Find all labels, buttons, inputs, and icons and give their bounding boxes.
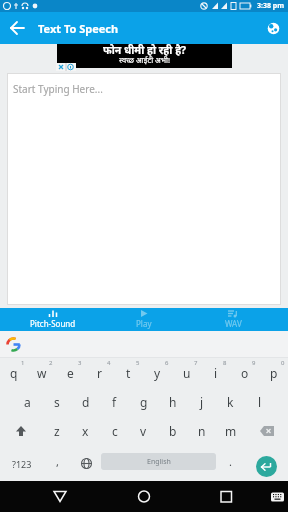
button[interactable]: y	[143, 358, 172, 388]
staticText: i	[214, 365, 218, 381]
staticText: l	[258, 394, 262, 410]
staticText: u	[183, 365, 191, 381]
staticText: 0	[281, 359, 285, 367]
button[interactable]	[214, 485, 238, 509]
button[interactable]	[8, 18, 28, 38]
button[interactable]: ?123	[0, 446, 43, 481]
staticText: 6	[165, 359, 169, 367]
button[interactable]: s	[42, 388, 71, 416]
button[interactable]: k	[216, 388, 245, 416]
staticText: p	[270, 365, 278, 381]
button[interactable]: r	[85, 358, 114, 388]
staticText: 2	[49, 359, 53, 367]
staticText: Text To Speech	[38, 21, 119, 36]
staticText: t	[126, 365, 131, 381]
staticText: g	[140, 394, 148, 410]
staticText: .	[229, 454, 232, 469]
staticText: o	[241, 365, 249, 381]
button[interactable]: x	[71, 416, 100, 446]
button[interactable]	[6, 337, 21, 352]
button[interactable]	[0, 416, 42, 446]
button[interactable]: g	[129, 388, 158, 416]
button[interactable]: d	[71, 388, 100, 416]
staticText: 3:38 pm	[257, 1, 285, 11]
staticText: w	[37, 365, 47, 381]
button[interactable]: v	[129, 416, 158, 446]
staticText: Start Typing Here...	[13, 82, 103, 96]
staticText: 1	[21, 359, 25, 367]
button[interactable]	[267, 22, 280, 35]
staticText: 7	[194, 359, 198, 367]
staticText: c	[112, 423, 118, 439]
staticText: s	[54, 394, 60, 410]
staticText: ,	[56, 454, 59, 469]
button[interactable]: w	[28, 358, 56, 388]
staticText: 8	[223, 359, 227, 367]
button[interactable]	[245, 416, 288, 446]
button[interactable]: Start Typing Here...	[7, 73, 281, 305]
button[interactable]: .	[216, 446, 245, 481]
button[interactable]: English	[101, 446, 216, 481]
staticText: r	[97, 365, 102, 381]
button[interactable]	[132, 485, 156, 509]
staticText: 9	[252, 359, 256, 367]
button[interactable]	[245, 446, 288, 481]
button[interactable]: m	[216, 416, 245, 446]
staticText: x	[82, 423, 89, 439]
button[interactable]: WAV	[185, 308, 281, 331]
staticText: q	[10, 365, 18, 381]
button[interactable]: p	[259, 358, 288, 388]
button[interactable]: t	[114, 358, 143, 388]
staticText: j	[200, 394, 204, 410]
button[interactable]: n	[187, 416, 216, 446]
button[interactable]	[48, 485, 72, 509]
button[interactable]: b	[158, 416, 187, 446]
staticText: a	[24, 394, 31, 410]
staticText: 4	[107, 359, 111, 367]
staticText: h	[169, 394, 177, 410]
button[interactable]: फोन धीमी हो रही है?	[57, 44, 232, 68]
button[interactable]: Play	[96, 308, 192, 331]
button[interactable]: l	[245, 388, 274, 416]
button[interactable]: j	[187, 388, 216, 416]
button[interactable]: e	[56, 358, 85, 388]
staticText: b	[169, 423, 177, 439]
staticText: k	[227, 394, 234, 410]
staticText: 5	[136, 359, 140, 367]
staticText: f	[112, 394, 117, 410]
staticText: y	[154, 365, 161, 381]
button[interactable]: c	[100, 416, 129, 446]
button[interactable]: a	[13, 388, 42, 416]
staticText: v	[140, 423, 147, 439]
staticText: e	[67, 365, 74, 381]
button[interactable]: i	[201, 358, 230, 388]
button[interactable]: z	[42, 416, 71, 446]
staticText: Play	[136, 318, 152, 329]
staticText: फोन धीमी हो रही है?	[103, 43, 187, 57]
button[interactable]: ,	[43, 446, 72, 481]
staticText: 3	[78, 359, 82, 367]
button[interactable]: q	[0, 358, 28, 388]
button[interactable]: Pitch-Sound	[5, 308, 101, 331]
button[interactable]: u	[172, 358, 201, 388]
staticText: z	[54, 423, 60, 439]
button[interactable]: o	[230, 358, 259, 388]
staticText: स्वच्छ आईटी अभी!	[119, 55, 171, 65]
button[interactable]	[72, 446, 101, 481]
staticText: ?123	[12, 458, 32, 470]
button[interactable]: f	[100, 388, 129, 416]
staticText: n	[198, 423, 206, 439]
button[interactable]	[266, 485, 288, 509]
staticText: English	[147, 457, 171, 467]
button[interactable]: h	[158, 388, 187, 416]
staticText: m	[225, 423, 237, 439]
staticText: WAV	[225, 318, 242, 329]
staticText: d	[82, 394, 90, 410]
staticText: Pitch-Sound	[30, 318, 76, 329]
